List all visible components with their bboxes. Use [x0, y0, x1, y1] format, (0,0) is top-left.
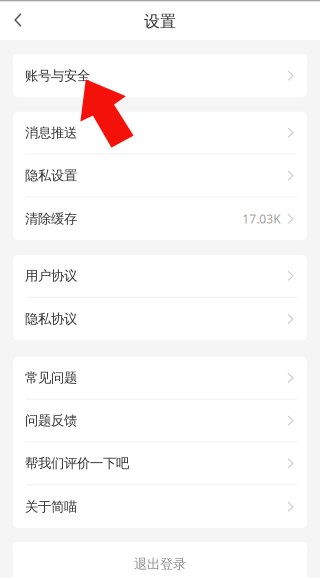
button[interactable]: 常见问题 — [13, 357, 307, 400]
staticText: 账号与安全 — [25, 67, 90, 84]
button[interactable]: Back — [0, 0, 36, 40]
staticText: 用户协议 — [25, 268, 77, 284]
staticText: 隐私协议 — [25, 311, 77, 327]
staticText: 17.03K — [242, 211, 280, 227]
button[interactable]: 隐私协议 — [13, 298, 307, 340]
staticText: 消息推送 — [25, 124, 77, 141]
button[interactable]: 帮我们评价一下吧 — [13, 442, 307, 485]
staticText: 设置 — [144, 12, 176, 31]
button[interactable]: 关于简喵 — [13, 485, 307, 528]
button[interactable]: 用户协议 — [13, 255, 307, 298]
button[interactable]: 消息推送 — [13, 112, 307, 155]
button[interactable]: 退出登录 — [0, 542, 320, 580]
button[interactable]: 清除缓存 — [13, 197, 307, 240]
staticText: 帮我们评价一下吧 — [25, 455, 129, 472]
staticText: 隐私设置 — [25, 167, 77, 184]
staticText: 清除缓存 — [25, 211, 77, 227]
staticText: 常见问题 — [25, 370, 77, 386]
button[interactable]: 问题反馈 — [13, 400, 307, 442]
staticText: 关于简喵 — [25, 498, 77, 515]
button[interactable]: 隐私设置 — [13, 155, 307, 197]
button[interactable]: 账号与安全 — [13, 54, 307, 97]
staticText: 退出登录 — [134, 556, 186, 572]
staticText: 问题反馈 — [25, 412, 77, 429]
